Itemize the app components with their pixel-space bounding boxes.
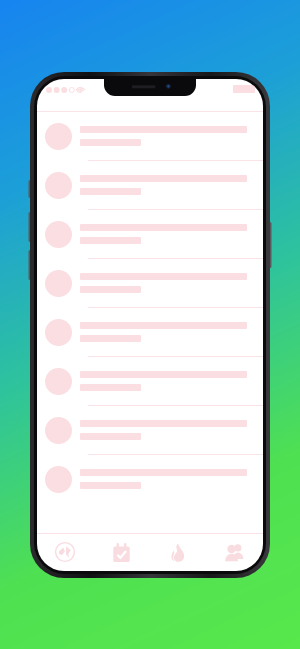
button[interactable] [37,259,263,307]
button[interactable]: People [206,533,263,571]
button[interactable] [37,112,263,160]
button[interactable]: Explore [37,533,93,571]
button[interactable] [37,357,263,405]
button[interactable]: Trending [149,533,206,571]
button[interactable] [37,161,263,209]
button[interactable] [37,455,263,503]
button[interactable] [37,210,263,258]
button[interactable] [37,406,263,454]
button[interactable]: Tasks [93,533,149,571]
button[interactable] [37,308,263,356]
